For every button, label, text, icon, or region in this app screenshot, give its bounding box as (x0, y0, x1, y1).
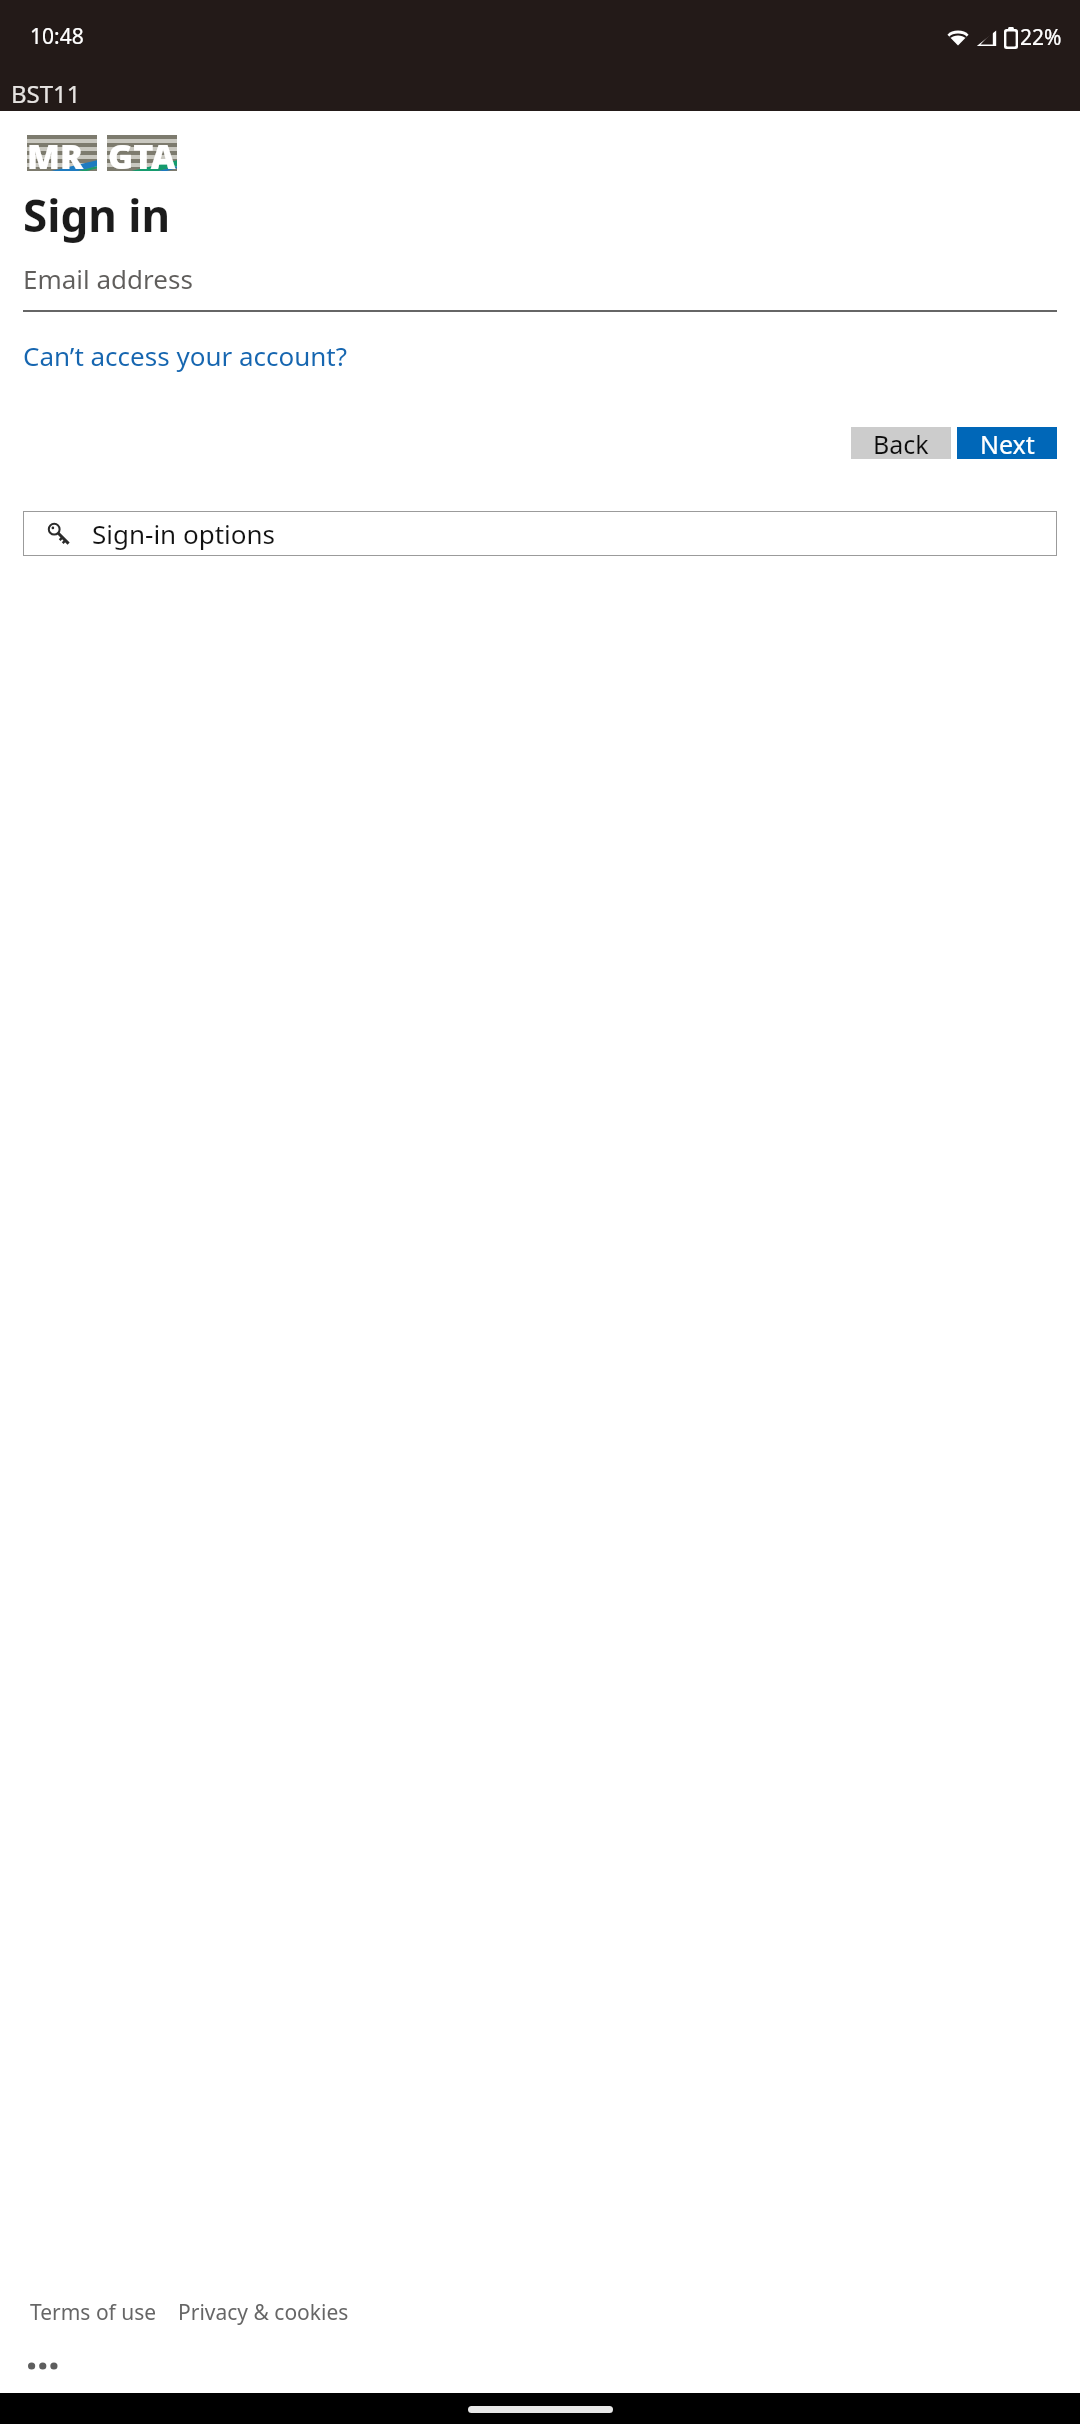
button[interactable]: Can’t access your account? (23, 338, 348, 373)
button[interactable]: Privacy & cookies (178, 2298, 349, 2327)
staticText: Sign in (23, 185, 171, 245)
staticText: BST11 (11, 77, 81, 110)
button[interactable]: Sign-in options (23, 511, 1057, 556)
staticText: MRA (27, 133, 97, 169)
staticText: Next (980, 427, 1035, 459)
button[interactable]: Next (957, 427, 1057, 459)
staticText: Can’t access your account? (23, 338, 348, 373)
staticText: 10:48 (30, 22, 84, 51)
staticText: Back (873, 427, 929, 459)
staticText: Terms of use (30, 2298, 157, 2327)
button[interactable]: More options (28, 2353, 70, 2379)
button[interactable]: Terms of use (30, 2298, 157, 2327)
button[interactable]: Back (851, 427, 951, 459)
staticText: 22% (1020, 23, 1062, 52)
staticText: Privacy & cookies (178, 2298, 349, 2327)
button[interactable]: Email address (23, 261, 1057, 312)
staticText: Email address (23, 261, 193, 296)
staticText: Sign-in options (92, 516, 276, 551)
staticText: GTA (108, 133, 176, 169)
